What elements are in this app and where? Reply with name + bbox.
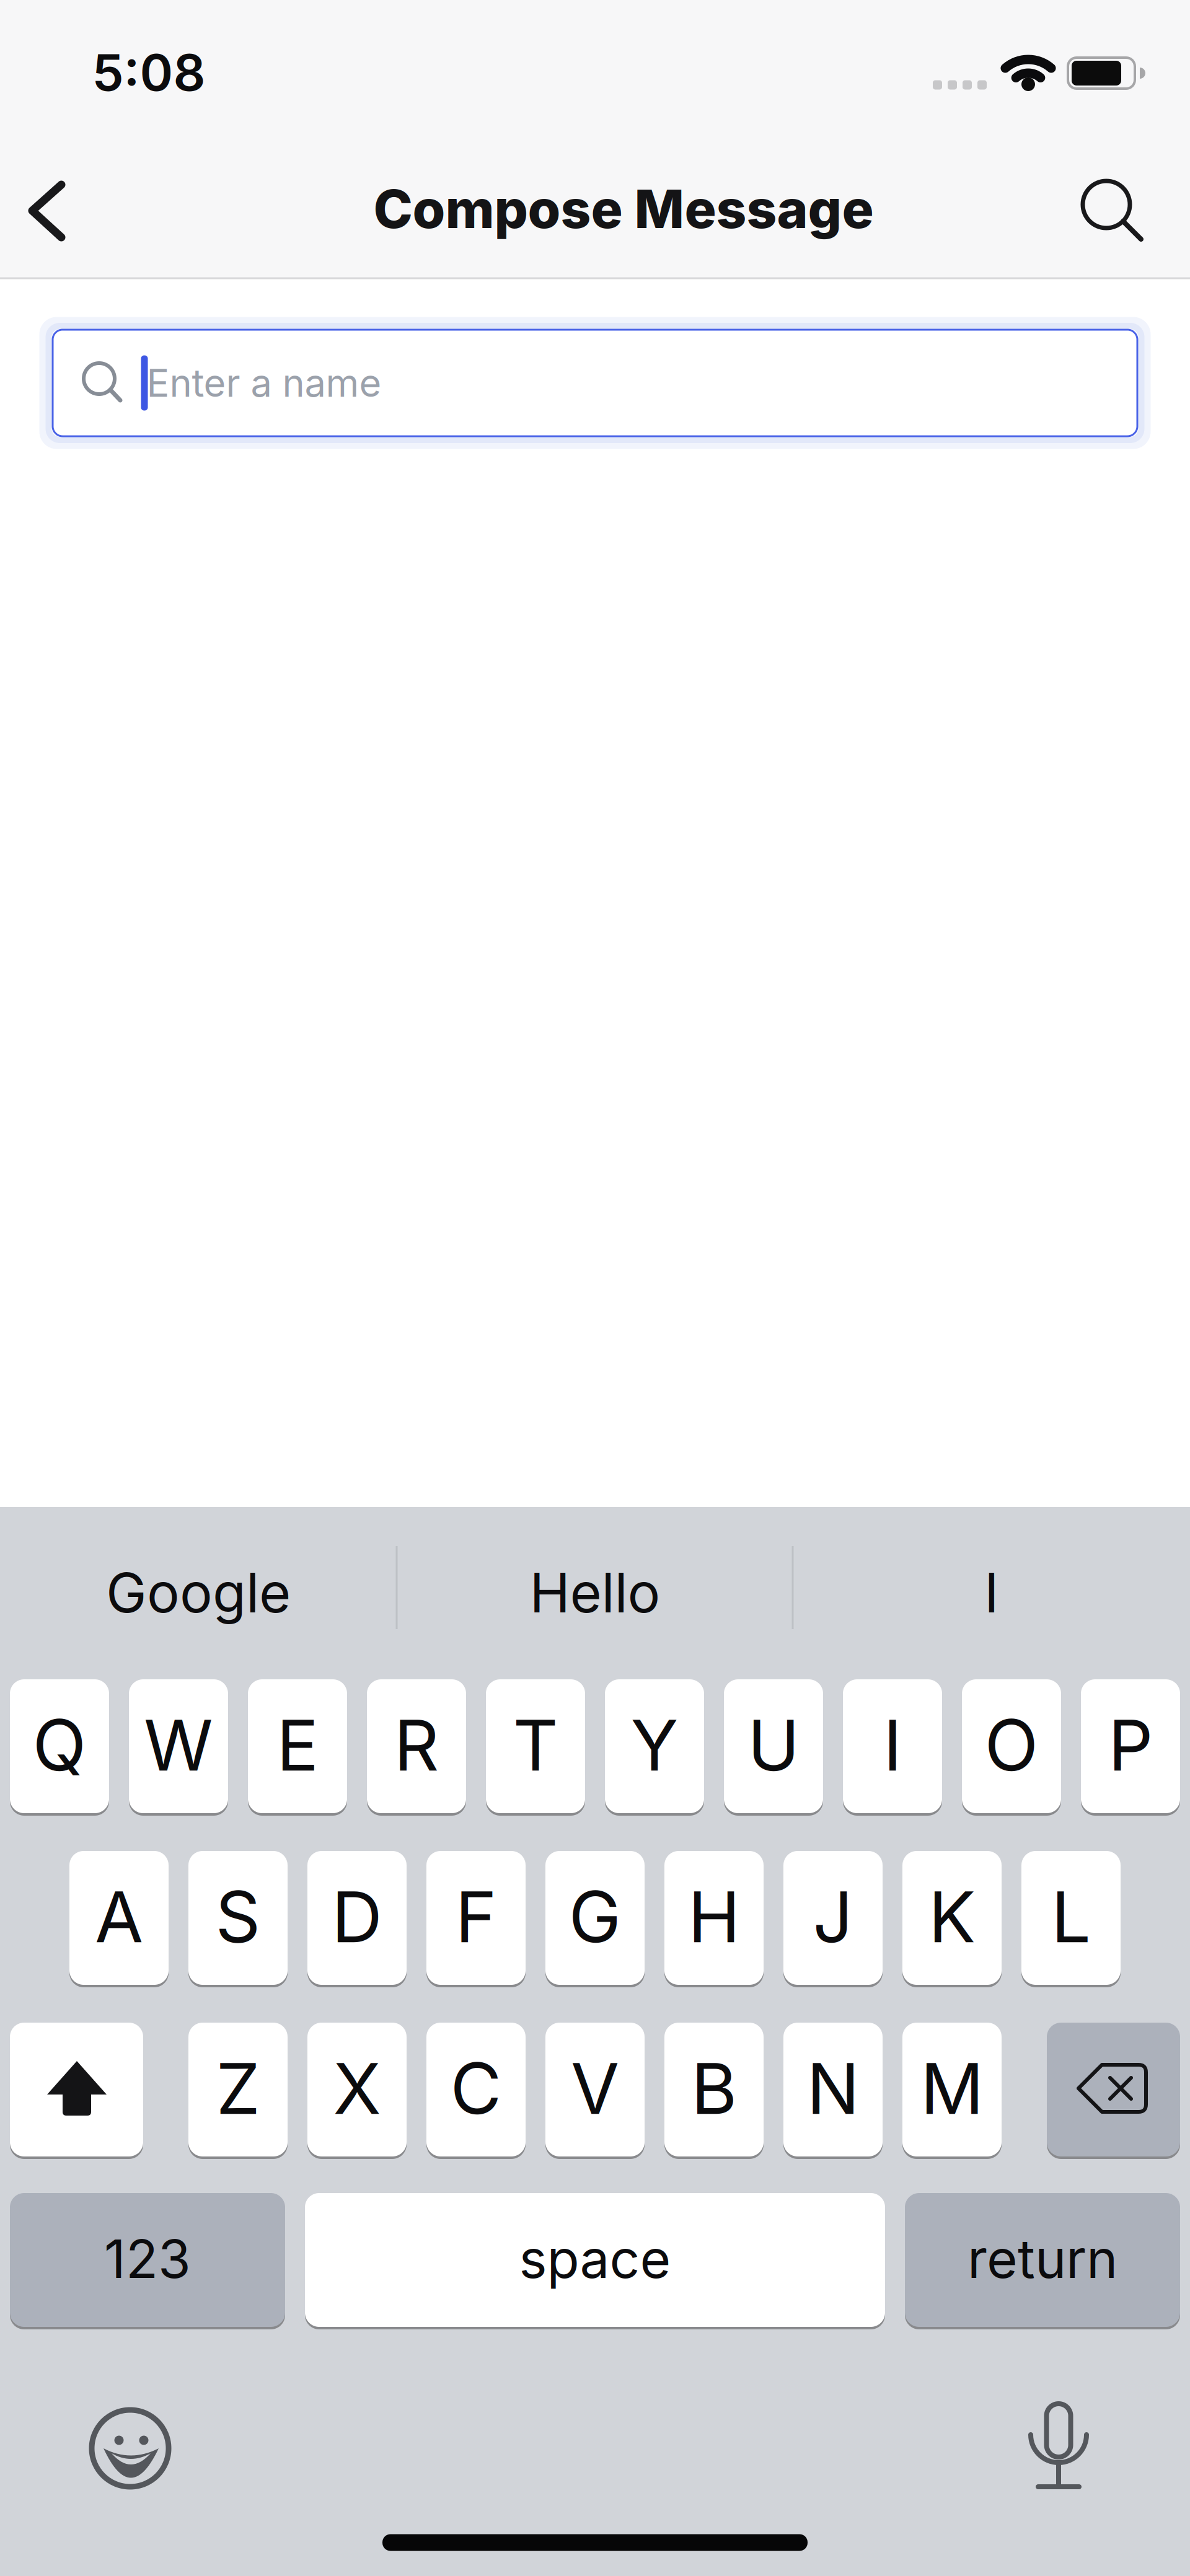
staticText: R — [394, 1703, 439, 1787]
staticText: Q — [33, 1703, 86, 1787]
staticText: 5:08 — [92, 42, 205, 103]
staticText: M — [920, 2046, 984, 2131]
staticText: H — [688, 1874, 740, 1959]
staticText: P — [1108, 1703, 1153, 1787]
staticText: C — [450, 2046, 502, 2131]
staticText: Z — [216, 2046, 260, 2131]
staticText: Hello — [530, 1560, 660, 1626]
staticText: Compose Message — [373, 177, 874, 241]
staticText: T — [513, 1703, 558, 1787]
staticText: N — [807, 2046, 859, 2131]
staticText: space — [519, 2227, 671, 2291]
staticText: Y — [631, 1703, 678, 1787]
staticText: K — [928, 1874, 976, 1959]
staticText: X — [333, 2046, 381, 2131]
staticText: A — [95, 1874, 143, 1959]
staticText: U — [747, 1703, 800, 1787]
staticText: E — [276, 1703, 319, 1787]
staticText: return — [967, 2227, 1117, 2291]
staticText: D — [332, 1874, 382, 1959]
staticText: V — [571, 2046, 619, 2131]
staticText: G — [569, 1874, 621, 1959]
staticText: B — [691, 2046, 737, 2131]
staticText: I — [883, 1703, 902, 1787]
staticText: I — [984, 1560, 999, 1626]
staticText: 123 — [104, 2227, 191, 2291]
staticText: W — [144, 1703, 213, 1787]
staticText: F — [455, 1874, 497, 1959]
staticText: Google — [106, 1560, 291, 1626]
staticText: L — [1051, 1874, 1091, 1959]
staticText: J — [813, 1874, 853, 1959]
staticText: O — [985, 1703, 1038, 1787]
staticText: S — [215, 1874, 261, 1959]
staticText: Enter a name — [147, 360, 381, 406]
